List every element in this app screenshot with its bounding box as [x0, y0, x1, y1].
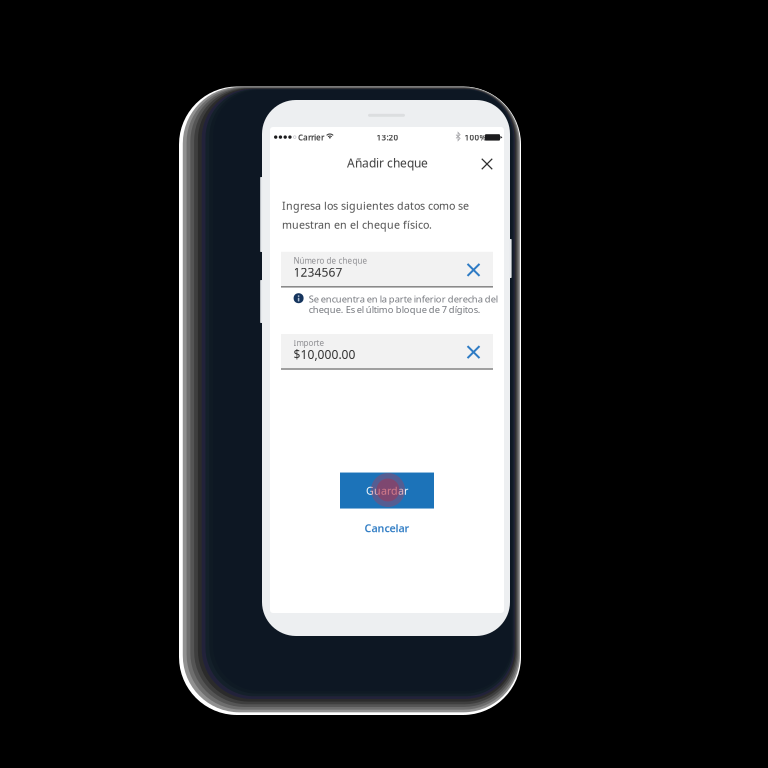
staticText: 1234567	[293, 264, 342, 280]
staticText: $10,000.00	[293, 346, 355, 362]
staticText: muestran en el cheque físico.	[282, 217, 432, 232]
staticText: 13:20	[377, 132, 399, 143]
staticText: Importe	[293, 338, 324, 348]
staticText: 100%	[464, 132, 486, 143]
staticText: Cancelar	[364, 521, 409, 535]
button[interactable]: Número de cheque	[281, 252, 493, 288]
button[interactable]: Guardar	[340, 472, 434, 508]
staticText: Guardar	[366, 483, 408, 498]
staticText: cheque. Es el último bloque de 7 dígitos…	[309, 303, 481, 315]
staticText: Se encuentra en la parte inferior derech…	[309, 293, 498, 305]
staticText: Ingresa los siguientes datos como se	[282, 198, 469, 213]
button[interactable]: Importe	[281, 334, 493, 370]
button[interactable]: Cancelar	[347, 516, 427, 540]
button[interactable]: Close	[473, 150, 501, 178]
staticText: Número de cheque	[293, 255, 367, 266]
staticText: Añadir cheque	[347, 155, 428, 171]
staticText: Carrier	[298, 132, 324, 143]
